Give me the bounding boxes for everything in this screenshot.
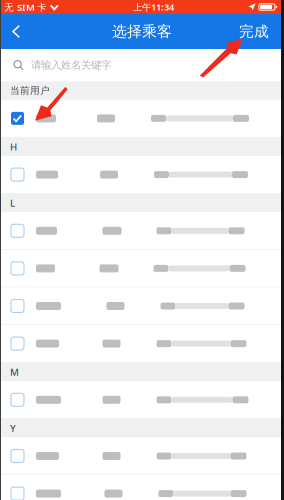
button[interactable]: 完成 [227, 14, 284, 49]
staticText: 请输入姓名关键字 [31, 59, 111, 72]
staticText: H [10, 140, 17, 153]
staticText: 选择乘客 [112, 22, 172, 41]
button[interactable] [0, 100, 284, 137]
staticText: M [10, 365, 19, 379]
staticText: 上午11:34 [133, 1, 174, 13]
staticText: L [10, 196, 15, 210]
button[interactable] [0, 325, 284, 363]
button[interactable]: 请输入姓名关键字 [0, 49, 284, 81]
button[interactable] [0, 156, 284, 194]
staticText: 完成 [239, 22, 269, 41]
staticText: 无 SIM 卡 [4, 0, 47, 14]
staticText: 当前用户 [10, 84, 50, 97]
button[interactable] [0, 250, 284, 287]
button[interactable] [0, 381, 284, 419]
button[interactable] [0, 475, 284, 500]
button[interactable]: 返回 [0, 14, 35, 49]
button[interactable] [0, 287, 284, 325]
staticText: Y [10, 422, 16, 435]
button[interactable] [0, 437, 284, 475]
button[interactable] [0, 212, 284, 250]
